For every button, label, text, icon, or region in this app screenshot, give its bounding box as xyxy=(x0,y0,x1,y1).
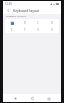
button[interactable]: Back xyxy=(12,95,19,102)
button[interactable]: Back xyxy=(5,7,11,13)
button[interactable]: B xyxy=(18,19,31,26)
staticText: G xyxy=(37,28,39,32)
button[interactable]: F xyxy=(18,26,31,33)
staticText: D xyxy=(51,21,53,25)
staticText: Keyboard layout xyxy=(13,8,40,13)
staticText: C xyxy=(37,21,39,25)
button[interactable]: E xyxy=(5,26,18,33)
button[interactable]: Recent apps xyxy=(45,95,52,102)
button[interactable] xyxy=(5,19,18,26)
staticText: E xyxy=(11,28,13,32)
staticText: H xyxy=(51,28,53,32)
button[interactable]: Home xyxy=(29,95,36,102)
staticText: 12:40 xyxy=(5,2,12,6)
button[interactable]: H xyxy=(45,26,59,33)
button[interactable]: C xyxy=(31,19,45,26)
staticText: F xyxy=(24,28,26,32)
staticText: B xyxy=(24,21,26,25)
button[interactable]: D xyxy=(45,19,59,26)
staticText: CURRENT LAYOUT xyxy=(6,15,26,18)
button[interactable]: G xyxy=(31,26,45,33)
